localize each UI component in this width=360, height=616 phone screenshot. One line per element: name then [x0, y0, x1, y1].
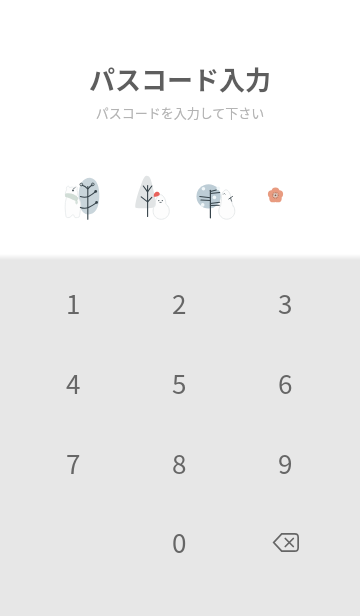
staticText: 0 [172, 523, 187, 561]
staticText: 9 [278, 444, 293, 482]
button[interactable]: Delete [232, 500, 338, 584]
button[interactable]: 2 [126, 261, 232, 345]
button[interactable]: 5 [126, 341, 232, 425]
button[interactable]: 9 [232, 421, 338, 505]
staticText: 2 [172, 284, 187, 322]
button[interactable]: 3 [232, 261, 338, 345]
staticText: 3 [278, 284, 293, 322]
button[interactable]: 1 [20, 261, 126, 345]
staticText: 5 [172, 364, 187, 402]
button[interactable]: 7 [20, 421, 126, 505]
staticText: パスコード入力 [0, 60, 360, 98]
button[interactable]: 8 [126, 421, 232, 505]
staticText: 8 [172, 444, 187, 482]
button[interactable]: 6 [232, 341, 338, 425]
staticText: 4 [66, 364, 81, 402]
other: Delete [265, 522, 305, 562]
staticText: 1 [66, 284, 81, 322]
staticText: パスコードを入力して下さい [0, 103, 360, 122]
staticText: 7 [66, 444, 81, 482]
button[interactable]: 0 [126, 500, 232, 584]
staticText: 6 [278, 364, 293, 402]
button[interactable]: 4 [20, 341, 126, 425]
